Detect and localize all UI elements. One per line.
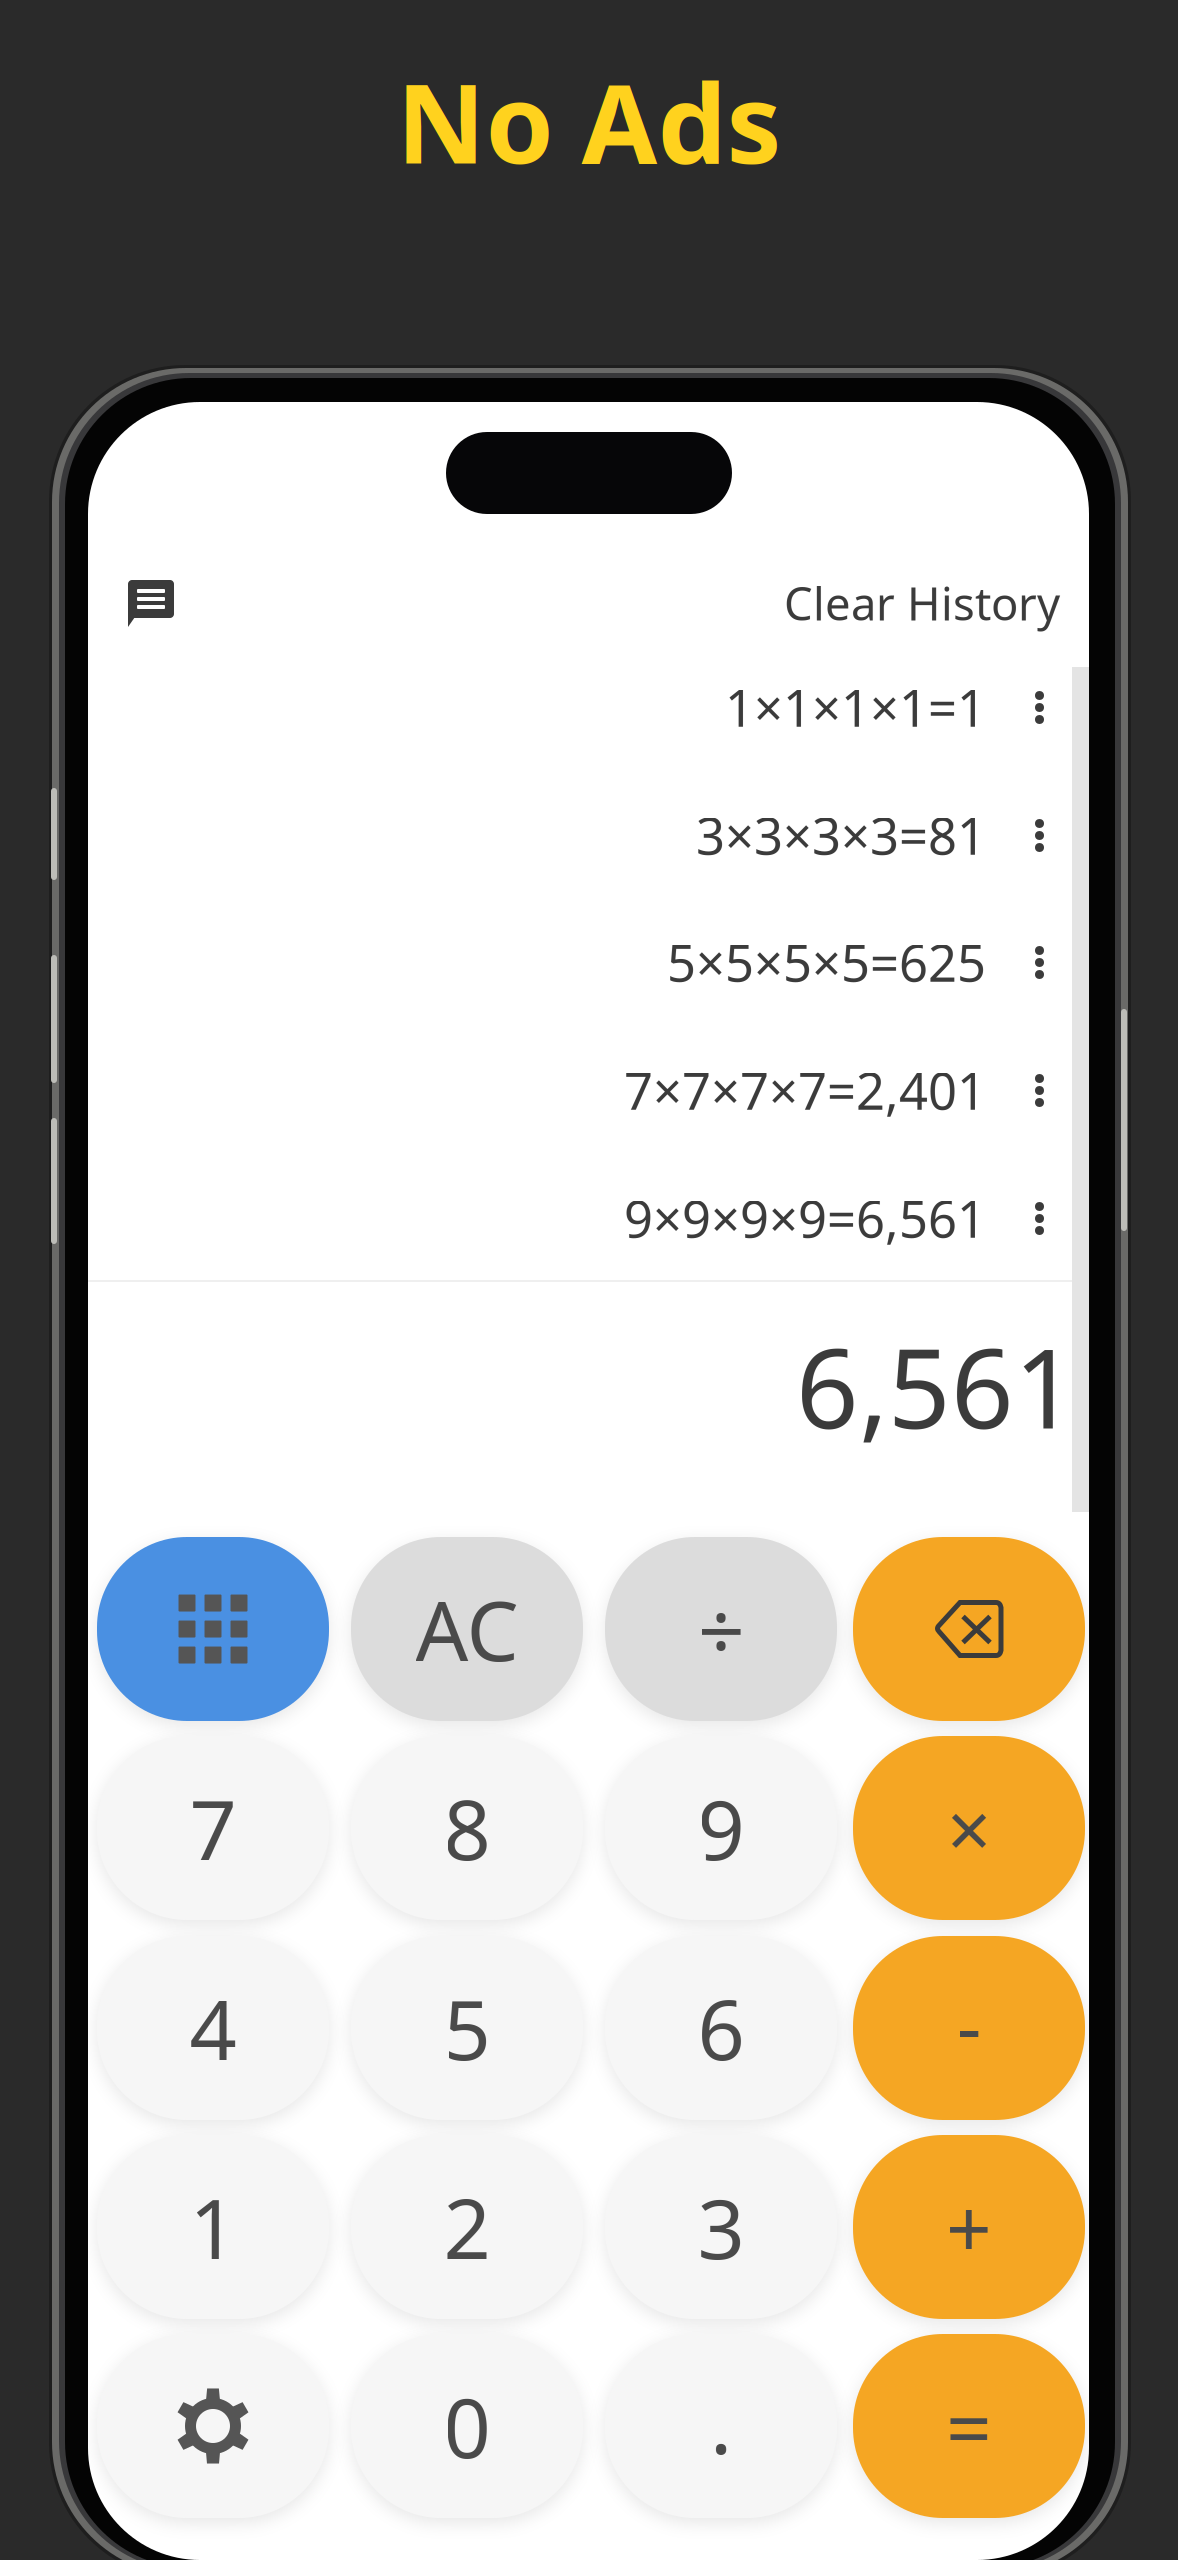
button[interactable]: . — [605, 2334, 837, 2518]
button[interactable]: History — [128, 580, 176, 628]
button[interactable]: Keypad — [97, 1537, 329, 1721]
staticText: 3×3×3×3=81 — [696, 801, 986, 869]
staticText: 5×5×5×5=625 — [667, 928, 986, 996]
staticText: 9 — [697, 1773, 744, 1883]
button[interactable]: = — [853, 2334, 1085, 2518]
staticText: 1 — [189, 2172, 236, 2282]
staticText: × — [947, 1777, 991, 1879]
staticText: No Ads — [396, 48, 781, 194]
button[interactable]: Clear History — [640, 573, 1060, 633]
staticText: - — [956, 1974, 981, 2076]
staticText: AC — [415, 1574, 518, 1684]
staticText: 0 — [443, 2371, 490, 2481]
button[interactable]: 7 — [97, 1736, 329, 1920]
staticText: 5 — [443, 1973, 490, 2083]
staticText: ÷ — [697, 1574, 744, 1684]
staticText: 3 — [697, 2172, 744, 2282]
staticText: Clear History — [784, 573, 1060, 633]
button[interactable]: AC — [351, 1537, 583, 1721]
button[interactable]: 1 — [97, 2135, 329, 2319]
button[interactable]: 0 — [351, 2334, 583, 2518]
staticText: 7 — [189, 1773, 236, 1883]
button[interactable]: 6 — [605, 1936, 837, 2120]
staticText: 4 — [189, 1973, 236, 2083]
staticText: + — [946, 2174, 992, 2280]
staticText: 2 — [443, 2172, 490, 2282]
button[interactable]: 4 — [97, 1936, 329, 2120]
button[interactable]: 1×1×1×1=1 — [88, 652, 1056, 762]
staticText: 1×1×1×1=1 — [725, 673, 986, 741]
button[interactable]: Settings — [97, 2334, 329, 2518]
button[interactable]: 8 — [351, 1736, 583, 1920]
staticText: 8 — [443, 1773, 490, 1883]
button[interactable]: 3×3×3×3=81 — [88, 780, 1056, 890]
button[interactable]: 9 — [605, 1736, 837, 1920]
staticText: 9×9×9×9=6,561 — [624, 1184, 986, 1252]
button[interactable]: 7×7×7×7=2,401 — [88, 1035, 1056, 1145]
staticText: 6 — [697, 1973, 744, 2083]
staticText: 6,561 — [796, 1313, 1077, 1459]
button[interactable]: + — [853, 2135, 1085, 2319]
button[interactable]: ÷ — [605, 1537, 837, 1721]
button[interactable]: 5 — [351, 1936, 583, 2120]
button[interactable]: 3 — [605, 2135, 837, 2319]
staticText: 7×7×7×7=2,401 — [624, 1056, 986, 1124]
button[interactable]: 9×9×9×9=6,561 — [88, 1163, 1056, 1273]
button[interactable]: 2 — [351, 2135, 583, 2319]
staticText: = — [946, 2373, 992, 2479]
button[interactable]: Backspace — [853, 1537, 1085, 1721]
button[interactable]: - — [853, 1936, 1085, 2120]
button[interactable]: × — [853, 1736, 1085, 1920]
staticText: . — [710, 2367, 732, 2477]
button[interactable]: 5×5×5×5=625 — [88, 907, 1056, 1017]
